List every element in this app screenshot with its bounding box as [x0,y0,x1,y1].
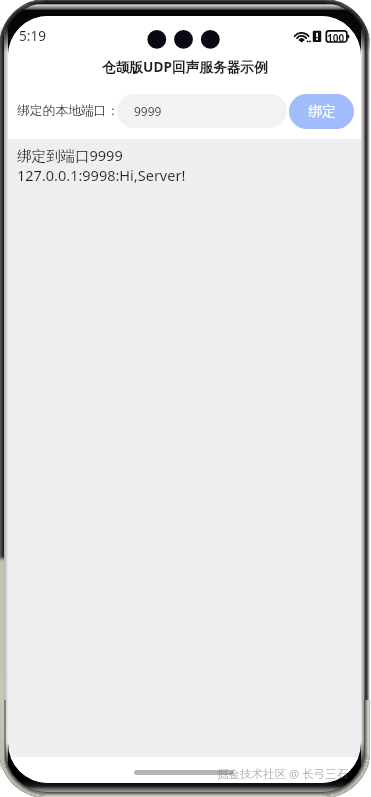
staticText: 100 [327,31,345,45]
other: Home gesture bar [134,770,234,775]
staticText: 掘金技术社区 @ 长弓三石 [217,766,349,782]
staticText: 127.0.0.1:9998:Hi,Server! [17,165,186,185]
staticText: 绑定 [308,103,336,121]
button[interactable]: 9999 [117,94,287,128]
staticText: 仓颉版UDP回声服务器示例 [102,57,268,76]
staticText: 绑定到端口9999 [17,145,123,165]
staticText: 绑定的本地端口： [17,103,120,119]
staticText: 5:19 [19,26,46,45]
staticText: 9999 [134,103,162,119]
button[interactable]: 绑定 [289,94,354,129]
